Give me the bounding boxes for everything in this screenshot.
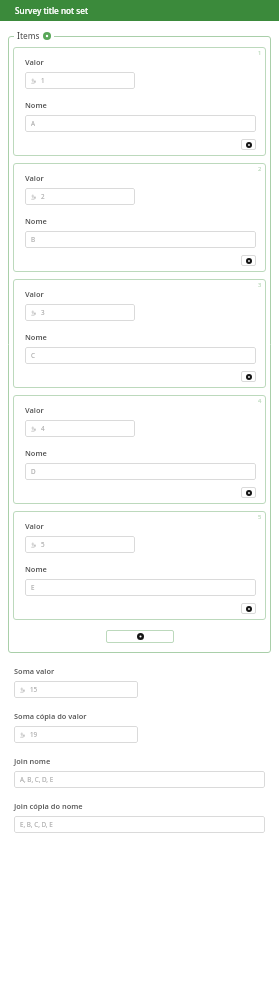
staticText: Nome	[25, 332, 47, 342]
button[interactable]: 5	[25, 536, 135, 553]
staticText: E, B, C, D, E	[20, 820, 53, 829]
button[interactable]: Remove item	[241, 487, 256, 498]
button[interactable]: Survey title not set	[15, 5, 89, 16]
staticText: D	[31, 467, 36, 476]
staticText: Soma valor	[14, 666, 55, 676]
staticText: Survey title not set	[15, 5, 89, 16]
button[interactable]: 4	[25, 420, 135, 437]
button[interactable]: Valor	[13, 395, 266, 504]
button[interactable]: Valor	[13, 279, 266, 388]
button[interactable]: Remove item	[241, 371, 256, 382]
staticText: Nome	[25, 216, 47, 226]
button[interactable]: Remove item	[241, 139, 256, 150]
staticText: 1	[41, 76, 45, 85]
staticText: 2	[41, 192, 45, 201]
staticText: Nome	[25, 564, 47, 574]
button[interactable]: E, B, C, D, E	[14, 816, 265, 833]
staticText: 4	[41, 424, 45, 433]
button[interactable]: 15	[14, 681, 138, 698]
staticText: Valor	[25, 173, 44, 183]
staticText: 2	[258, 165, 262, 173]
staticText: 3	[41, 308, 45, 317]
button[interactable]: 3	[25, 304, 135, 321]
button[interactable]: Add item	[106, 630, 174, 643]
staticText: Nome	[25, 100, 47, 110]
button[interactable]: E	[25, 579, 256, 596]
staticText: Join cópia do nome	[14, 801, 83, 811]
button[interactable]: Valor	[13, 47, 266, 156]
staticText: B	[31, 235, 36, 244]
staticText: 15	[30, 685, 38, 694]
staticText: Valor	[25, 405, 44, 415]
other: Add item	[43, 32, 51, 40]
staticText: 19	[30, 730, 38, 739]
staticText: 4	[258, 397, 262, 405]
staticText: E	[31, 583, 35, 592]
button[interactable]: Valor	[13, 511, 266, 620]
staticText: Valor	[25, 521, 44, 531]
staticText: Nome	[25, 448, 47, 458]
staticText: Items	[17, 30, 40, 41]
staticText: A, B, C, D, E	[20, 775, 54, 784]
staticText: 5	[258, 513, 262, 521]
button[interactable]: Valor	[13, 163, 266, 272]
button[interactable]: A, B, C, D, E	[14, 771, 265, 788]
button[interactable]: D	[25, 463, 256, 480]
button[interactable]: C	[25, 347, 256, 364]
staticText: C	[31, 351, 35, 360]
button[interactable]: 1	[25, 72, 135, 89]
staticText: 5	[41, 540, 45, 549]
button[interactable]: A	[25, 115, 256, 132]
button[interactable]: 19	[14, 726, 138, 743]
staticText: 3	[258, 281, 262, 289]
button[interactable]: 2	[25, 188, 135, 205]
staticText: Valor	[25, 289, 44, 299]
staticText: Join nome	[14, 756, 51, 766]
staticText: Valor	[25, 57, 44, 67]
staticText: A	[31, 119, 36, 128]
button[interactable]: Items	[17, 30, 51, 41]
button[interactable]: B	[25, 231, 256, 248]
button[interactable]: Remove item	[241, 255, 256, 266]
staticText: 1	[258, 49, 262, 57]
staticText: Soma cópia do valor	[14, 711, 87, 721]
button[interactable]: Remove item	[241, 603, 256, 614]
